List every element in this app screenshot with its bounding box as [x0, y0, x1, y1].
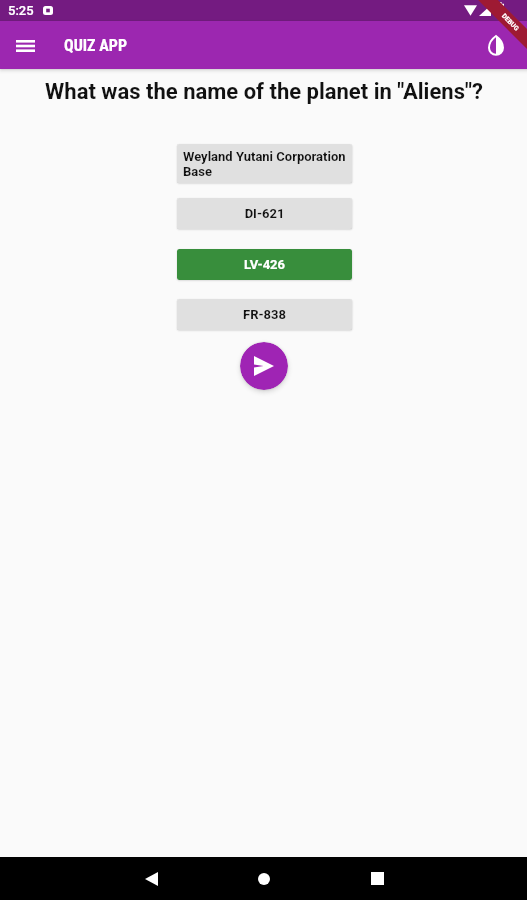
staticText: FR-838 — [183, 307, 346, 322]
button[interactable]: DI-621 — [177, 198, 352, 229]
button[interactable]: Toggle dark mode — [476, 25, 516, 65]
staticText: LV-426 — [183, 257, 346, 272]
button[interactable]: Recent apps — [355, 857, 399, 900]
button[interactable]: Next question — [240, 342, 288, 390]
button[interactable]: Home — [242, 857, 286, 900]
button[interactable]: Weyland Yutani Corporation — [177, 144, 352, 183]
button[interactable]: Open navigation menu — [1, 21, 49, 69]
staticText: Base — [183, 164, 212, 179]
staticText: What was the name of the planet in "Alie… — [45, 79, 483, 105]
button[interactable]: FR-838 — [177, 299, 352, 330]
staticText: DEBUG — [500, 12, 521, 33]
staticText: Weyland Yutani Corporation — [183, 149, 346, 164]
staticText: 5:25 — [8, 3, 34, 18]
staticText: DI-621 — [183, 206, 346, 221]
button[interactable]: LV-426 — [177, 249, 352, 280]
button[interactable]: Back — [129, 857, 173, 900]
staticText: QUIZ APP — [64, 36, 128, 55]
